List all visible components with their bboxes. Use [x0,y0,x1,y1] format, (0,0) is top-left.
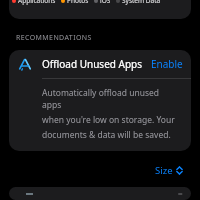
staticText: Size [155,164,173,177]
button[interactable]: Enable [151,57,183,71]
staticText: documents & data will be saved. [42,129,171,141]
staticText: RECOMMENDATIONS [16,33,92,43]
staticText: iOS [100,0,111,5]
staticText: Photos [67,0,89,5]
staticText: System Data [122,0,161,5]
staticText: Applications [18,0,56,5]
button[interactable]: Size [152,162,186,179]
button[interactable]: Offload Unused Apps [9,50,191,78]
button[interactable]: Telegram [9,187,191,200]
staticText: when you're low on storage. Your [42,114,175,126]
staticText: Automatically offload unused apps [42,87,179,111]
staticText: Offload Unused Apps [42,57,143,71]
